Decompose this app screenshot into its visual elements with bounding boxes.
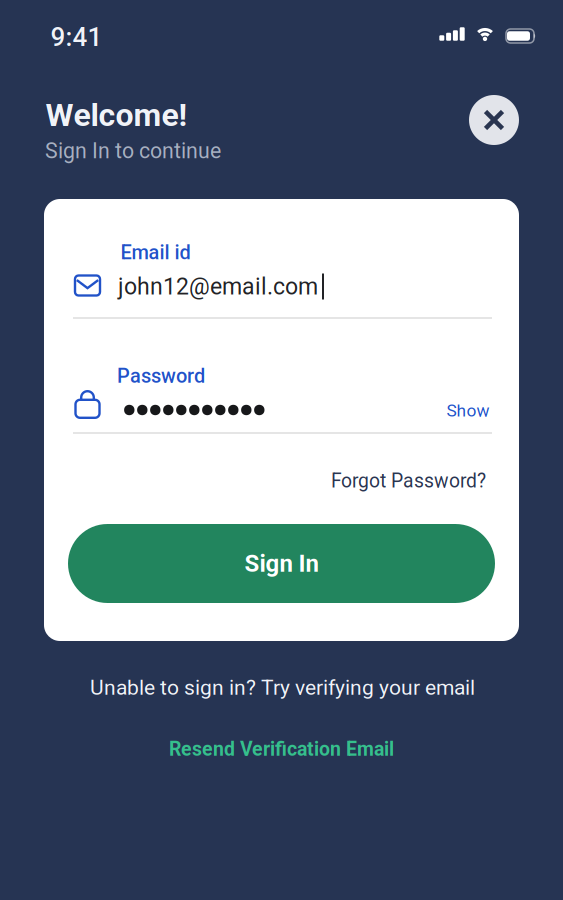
button[interactable]: Resend Verification Email xyxy=(169,738,394,760)
staticText: Unable to sign in? Try verifying your em… xyxy=(90,675,475,700)
button[interactable]: Sign In xyxy=(68,524,495,603)
button[interactable]: Show xyxy=(446,400,489,421)
button[interactable]: Forgot Password? xyxy=(331,470,486,492)
staticText: Welcome! xyxy=(45,96,187,134)
staticText: Password xyxy=(117,364,205,388)
staticText: john12@email.com xyxy=(118,273,318,300)
staticText: 9:41 xyxy=(50,22,102,52)
button[interactable]: Close xyxy=(469,95,519,145)
staticText: Resend Verification Email xyxy=(169,738,394,760)
staticText: Forgot Password? xyxy=(331,470,486,492)
staticText: Show xyxy=(446,400,489,421)
staticText: Email id xyxy=(120,241,190,264)
staticText: Sign In xyxy=(244,549,318,577)
staticText: Sign In to continue xyxy=(45,138,221,163)
